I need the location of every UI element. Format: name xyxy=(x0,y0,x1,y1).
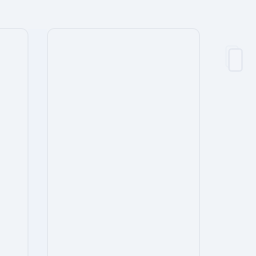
button[interactable]: Cards xyxy=(225,45,249,77)
